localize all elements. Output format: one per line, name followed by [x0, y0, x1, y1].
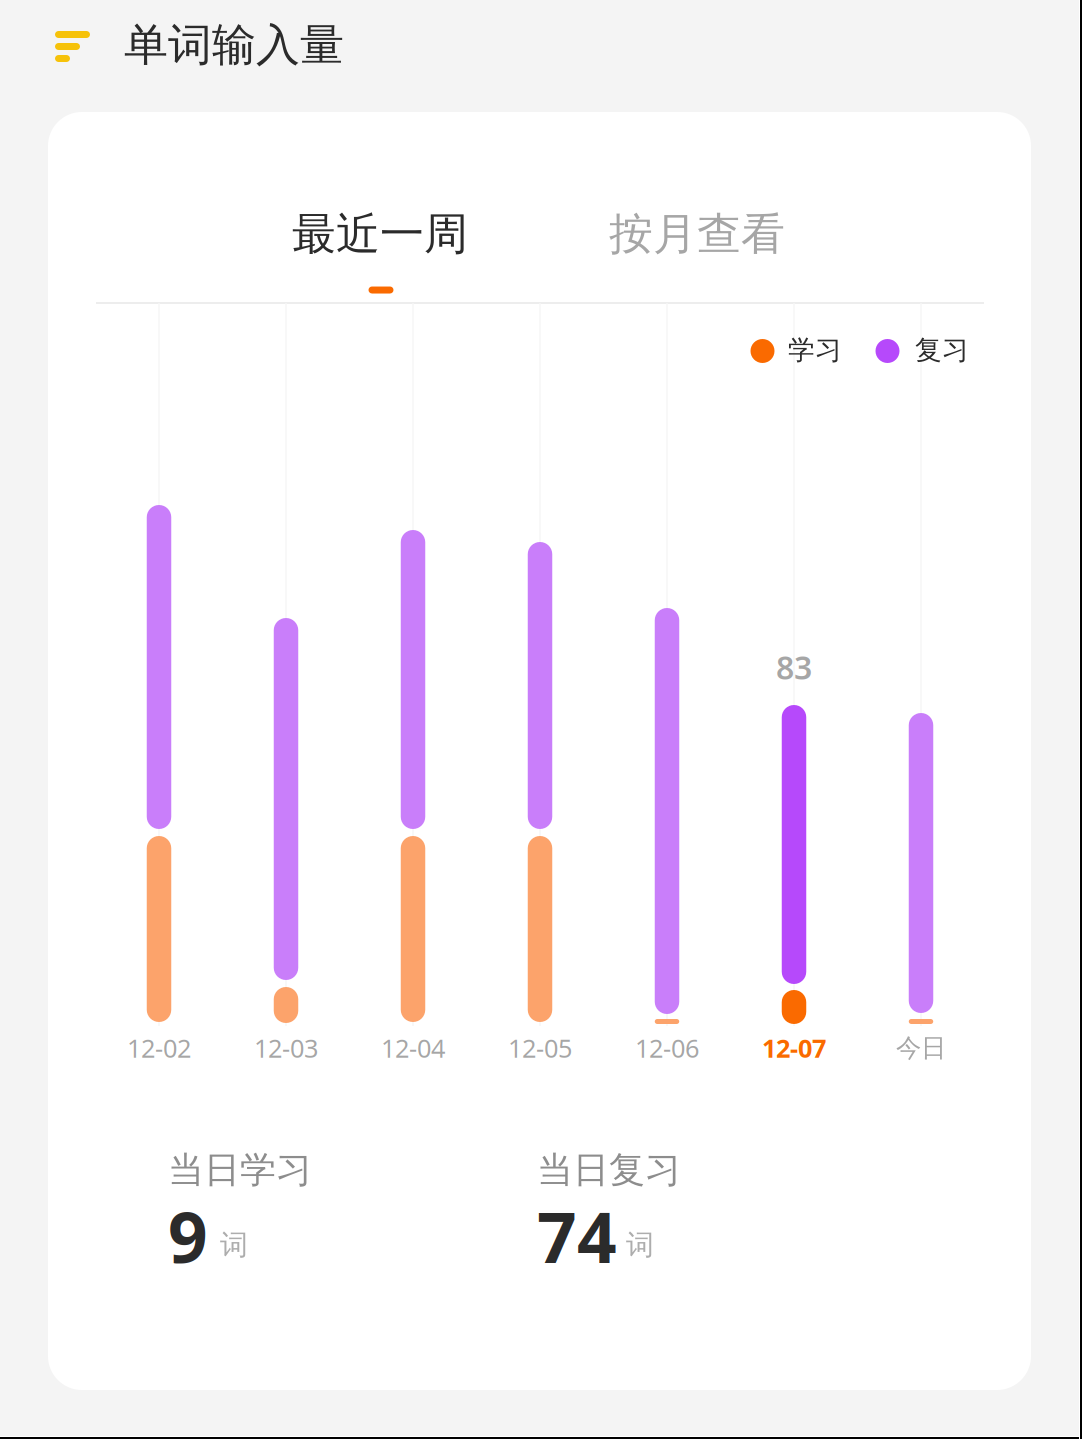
button[interactable]: 12-02	[104, 296, 214, 1056]
staticText: 12-03	[254, 1031, 318, 1065]
button[interactable]: 单词输入量	[55, 31, 90, 62]
staticText: 12-02	[127, 1031, 191, 1065]
staticText: 当日复习	[537, 1148, 681, 1192]
staticText: 74	[537, 1190, 617, 1282]
button[interactable]: 12-05	[485, 296, 595, 1056]
staticText: 12-05	[508, 1031, 572, 1065]
button[interactable]: 12-03	[231, 296, 341, 1056]
button[interactable]: 按月查看	[572, 189, 822, 279]
button[interactable]: 12-07	[739, 296, 849, 1056]
staticText: 12-07	[762, 1031, 826, 1065]
staticText: 按月查看	[609, 207, 785, 261]
staticText: 当日学习	[168, 1148, 312, 1192]
staticText: 12-06	[635, 1031, 699, 1065]
button[interactable]: 今日	[866, 296, 976, 1056]
staticText: 9	[168, 1190, 208, 1282]
staticText: 复习	[915, 334, 969, 366]
staticText: 学习	[788, 334, 842, 366]
staticText: 单词输入量	[124, 18, 344, 72]
staticText: 12-04	[381, 1031, 445, 1065]
staticText: 83	[776, 646, 812, 688]
button[interactable]: 12-06	[612, 296, 722, 1056]
staticText: 最近一周	[292, 207, 468, 261]
staticText: 词	[220, 1228, 248, 1262]
button[interactable]: 12-04	[358, 296, 468, 1056]
staticText: 词	[626, 1228, 654, 1262]
staticText: 今日	[896, 1032, 946, 1063]
button[interactable]: 最近一周	[255, 189, 505, 279]
